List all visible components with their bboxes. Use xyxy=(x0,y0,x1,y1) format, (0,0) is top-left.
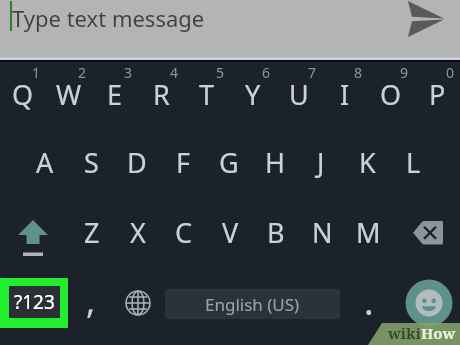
staticText: How xyxy=(421,323,456,343)
staticText: W xyxy=(56,76,82,113)
button[interactable]: U xyxy=(276,60,322,128)
button[interactable]: Y xyxy=(230,60,276,128)
staticText: 7 xyxy=(308,63,317,82)
staticText: J xyxy=(317,144,325,181)
button[interactable]: O xyxy=(368,60,414,128)
button[interactable]: T xyxy=(184,60,230,128)
staticText: R xyxy=(153,76,170,113)
button[interactable]: Shift xyxy=(10,198,56,266)
staticText: G xyxy=(219,144,239,181)
button[interactable]: J xyxy=(298,128,344,196)
staticText: ?123 xyxy=(14,289,55,315)
staticText: O xyxy=(380,76,402,113)
button[interactable]: P xyxy=(414,60,460,128)
staticText: E xyxy=(107,76,123,113)
staticText: D xyxy=(127,144,147,181)
button[interactable]: E xyxy=(92,60,138,128)
button[interactable]: N xyxy=(299,198,345,266)
staticText: C xyxy=(175,214,193,251)
button[interactable]: D xyxy=(114,128,160,196)
staticText: 8 xyxy=(354,63,363,82)
staticText: English (US) xyxy=(205,293,300,316)
button[interactable]: ?123 xyxy=(0,278,68,328)
button[interactable]: . xyxy=(346,267,392,335)
staticText: L xyxy=(406,144,421,181)
button[interactable]: F xyxy=(160,128,206,196)
staticText: M xyxy=(356,214,381,251)
staticText: S xyxy=(84,144,99,181)
staticText: , xyxy=(86,278,96,324)
button[interactable]: English (US) xyxy=(165,289,340,319)
staticText: 4 xyxy=(170,63,179,82)
button[interactable]: W xyxy=(46,60,92,128)
button[interactable]: C xyxy=(161,198,207,266)
button[interactable]: S xyxy=(68,128,114,196)
staticText: wiki xyxy=(388,323,421,343)
button[interactable]: Backspace xyxy=(405,198,451,266)
button[interactable]: I xyxy=(322,60,368,128)
staticText: . xyxy=(364,277,374,326)
button[interactable]: Send xyxy=(405,0,453,40)
staticText: H xyxy=(265,144,286,181)
button[interactable]: Change language xyxy=(115,268,161,336)
staticText: I xyxy=(340,76,350,113)
button[interactable]: X xyxy=(115,198,161,266)
button[interactable]: R xyxy=(138,60,184,128)
staticText: Type text message xyxy=(12,3,205,33)
staticText: A xyxy=(36,144,54,181)
staticText: 9 xyxy=(400,63,409,82)
staticText: P xyxy=(429,76,446,113)
staticText: Q xyxy=(12,76,34,113)
button[interactable]: B xyxy=(253,198,299,266)
button[interactable]: A xyxy=(22,128,68,196)
staticText: N xyxy=(312,214,333,251)
button[interactable]: Type text message xyxy=(0,0,460,59)
button[interactable]: M xyxy=(345,198,391,266)
staticText: V xyxy=(222,214,239,251)
button[interactable]: , xyxy=(68,267,114,335)
staticText: 3 xyxy=(124,63,133,82)
button[interactable]: V xyxy=(207,198,253,266)
staticText: K xyxy=(359,144,376,181)
button[interactable]: H xyxy=(252,128,298,196)
staticText: 1 xyxy=(32,63,41,82)
button[interactable]: L xyxy=(390,128,436,196)
staticText: 0 xyxy=(446,63,455,82)
staticText: X xyxy=(130,214,146,251)
button[interactable]: Z xyxy=(69,198,115,266)
staticText: Z xyxy=(84,214,100,251)
staticText: B xyxy=(267,214,285,251)
staticText: T xyxy=(199,76,215,113)
button[interactable]: K xyxy=(344,128,390,196)
button[interactable]: Emoji xyxy=(404,278,454,328)
staticText: U xyxy=(289,76,309,113)
staticText: Y xyxy=(245,76,261,113)
staticText: 2 xyxy=(78,63,87,82)
staticText: 5 xyxy=(216,63,225,82)
staticText: 6 xyxy=(262,63,271,82)
button[interactable]: G xyxy=(206,128,252,196)
button[interactable]: Q xyxy=(0,60,46,128)
staticText: F xyxy=(176,144,191,181)
